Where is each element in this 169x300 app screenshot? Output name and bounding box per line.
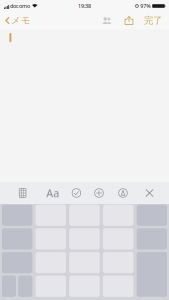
staticText: メモ	[11, 15, 31, 26]
button[interactable]: Aa	[43, 183, 63, 203]
button[interactable]: Key	[69, 228, 100, 249]
button[interactable]: メモ	[0, 13, 35, 28]
button[interactable]: Share	[122, 13, 135, 28]
staticText: 完了	[144, 15, 162, 26]
button[interactable]: Checklist	[66, 183, 86, 203]
staticText: docomo	[10, 2, 30, 10]
button[interactable]: Hide Keyboard	[139, 183, 159, 203]
staticText: Aa	[46, 186, 59, 200]
button[interactable]: Add People	[99, 13, 114, 28]
staticText: 19:38	[78, 2, 91, 10]
button[interactable]: 完了	[143, 13, 163, 28]
staticText: 97%	[140, 2, 150, 10]
button[interactable]: Markup	[113, 183, 133, 203]
button[interactable]: Key	[103, 228, 133, 249]
button[interactable]: Insert	[89, 183, 109, 203]
button[interactable]: Table	[11, 183, 34, 203]
